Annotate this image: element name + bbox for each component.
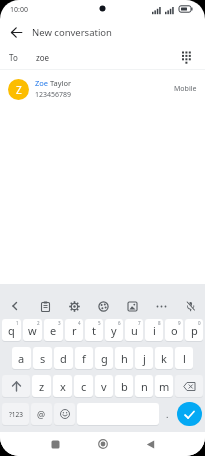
staticText: y — [111, 323, 117, 338]
button[interactable] — [147, 298, 176, 314]
button[interactable] — [47, 436, 63, 452]
button[interactable]: . — [160, 400, 175, 428]
staticText: To — [9, 52, 18, 63]
button[interactable] — [176, 298, 205, 314]
button[interactable]: To — [0, 45, 205, 69]
button[interactable]: l — [175, 347, 193, 369]
button[interactable] — [5, 21, 27, 43]
button[interactable]: u — [125, 319, 143, 341]
button[interactable]: g — [95, 347, 113, 369]
button[interactable]: a — [12, 347, 31, 369]
staticText: b — [121, 379, 128, 394]
staticText: d — [60, 351, 67, 366]
staticText: f — [82, 351, 86, 366]
staticText: c — [81, 379, 87, 394]
button[interactable] — [2, 375, 30, 397]
button[interactable] — [54, 403, 75, 425]
button[interactable]: d — [54, 347, 73, 369]
staticText: g — [101, 351, 108, 366]
staticText: 6 — [118, 320, 121, 326]
staticText: ?123 — [9, 410, 23, 419]
staticText: 9 — [178, 320, 181, 326]
button[interactable] — [60, 298, 89, 314]
button[interactable]: r — [65, 319, 83, 341]
staticText: p — [191, 323, 198, 338]
button[interactable]: v — [95, 375, 113, 397]
button[interactable]: ?123 — [2, 403, 29, 425]
button[interactable]: j — [135, 347, 153, 369]
button[interactable]: f — [75, 347, 93, 369]
staticText: 1 — [16, 320, 19, 326]
staticText: 7 — [138, 320, 141, 326]
button[interactable]: Z — [0, 70, 205, 108]
staticText: . — [166, 408, 169, 420]
button[interactable] — [177, 402, 202, 426]
staticText: 10:00 — [10, 5, 28, 15]
staticText: 0 — [198, 320, 201, 326]
button[interactable]: x — [53, 375, 72, 397]
staticText: x — [60, 379, 66, 394]
staticText: Z — [16, 83, 22, 97]
button[interactable] — [178, 48, 196, 66]
button[interactable]: m — [155, 375, 173, 397]
staticText: q — [8, 323, 15, 338]
staticText: u — [131, 323, 138, 338]
button[interactable]: w — [23, 319, 42, 341]
staticText: w — [28, 323, 37, 338]
button[interactable]: t — [85, 319, 103, 341]
staticText: s — [40, 351, 46, 366]
button[interactable]: b — [115, 375, 133, 397]
staticText: 123456789 — [35, 90, 72, 100]
staticText: 3 — [58, 320, 61, 326]
staticText: o — [171, 323, 178, 338]
button[interactable] — [0, 298, 30, 314]
staticText: a — [18, 351, 25, 366]
button[interactable] — [118, 298, 147, 314]
staticText: zoe — [36, 52, 50, 63]
staticText: j — [143, 351, 146, 366]
button[interactable] — [175, 375, 203, 397]
button[interactable]: k — [155, 347, 173, 369]
staticText: Mobile — [174, 84, 197, 94]
staticText: h — [121, 351, 128, 366]
staticText: e — [50, 323, 57, 338]
staticText: l — [183, 351, 186, 366]
button[interactable]: p — [185, 319, 203, 341]
button[interactable]: z — [32, 375, 51, 397]
button[interactable]: o — [165, 319, 183, 341]
staticText: m — [159, 379, 170, 394]
staticText: New conversation — [32, 26, 112, 39]
staticText: 2 — [37, 320, 40, 326]
button[interactable]: c — [74, 375, 93, 397]
staticText: @ — [37, 408, 46, 420]
staticText: 8 — [158, 320, 161, 326]
button[interactable]: New conversation — [0, 19, 205, 45]
staticText: t — [92, 323, 96, 338]
staticText: Zoe Taylor — [35, 78, 72, 88]
button[interactable]: q — [2, 319, 21, 341]
button[interactable]: s — [33, 347, 52, 369]
button[interactable]: @ — [31, 403, 52, 425]
button[interactable] — [30, 298, 60, 314]
staticText: 4 — [78, 320, 81, 326]
button[interactable] — [142, 436, 158, 452]
button[interactable] — [89, 298, 118, 314]
button[interactable]: e — [44, 319, 63, 341]
button[interactable]: h — [115, 347, 133, 369]
staticText: r — [72, 323, 77, 338]
staticText: n — [141, 379, 148, 394]
button[interactable]: i — [145, 319, 163, 341]
staticText: i — [153, 323, 156, 338]
staticText: k — [161, 351, 167, 366]
staticText: z — [39, 379, 45, 394]
button[interactable]: n — [135, 375, 153, 397]
button[interactable]: y — [105, 319, 123, 341]
staticText: 5 — [98, 320, 101, 326]
button[interactable] — [95, 436, 111, 452]
staticText: v — [101, 379, 107, 394]
